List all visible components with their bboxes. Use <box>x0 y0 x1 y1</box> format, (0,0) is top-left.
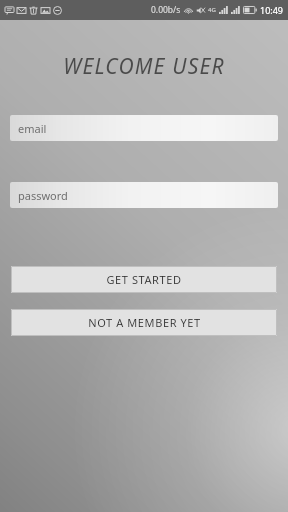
staticText: email <box>18 121 47 136</box>
staticText: 0.00b/s <box>151 4 181 16</box>
staticText: 10:49 <box>260 4 284 16</box>
staticText: NOT A MEMBER YET <box>88 315 201 330</box>
button[interactable]: NOT A MEMBER YET <box>11 309 277 336</box>
staticText: 4G <box>208 6 216 14</box>
button[interactable]: email <box>10 115 278 141</box>
staticText: WELCOME USER <box>0 52 288 81</box>
button[interactable]: GET STARTED <box>11 266 277 293</box>
staticText: GET STARTED <box>106 272 182 287</box>
staticText: password <box>18 188 68 203</box>
button[interactable]: password <box>10 182 278 208</box>
